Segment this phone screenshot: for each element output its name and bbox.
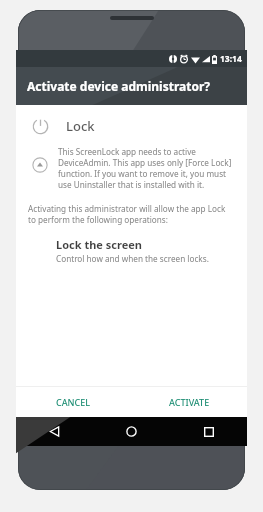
button[interactable]: Back: [16, 417, 93, 446]
staticText: Activating this administrator will allow…: [28, 203, 233, 225]
staticText: This ScreenLock app needs to active Devi…: [58, 146, 237, 190]
staticText: 13:14: [220, 53, 242, 65]
button[interactable]: Home: [93, 417, 170, 446]
staticText: Lock: [66, 117, 95, 135]
staticText: Control how and when the screen locks.: [56, 253, 209, 264]
staticText: CANCEL: [56, 396, 91, 408]
staticText: Lock the screen: [56, 237, 142, 252]
button[interactable]: Recent apps: [170, 417, 247, 446]
staticText: Activate device administrator?: [27, 78, 211, 94]
button[interactable]: ACTIVATE: [131, 387, 247, 417]
staticText: ACTIVATE: [169, 396, 210, 408]
button[interactable]: CANCEL: [16, 387, 131, 417]
